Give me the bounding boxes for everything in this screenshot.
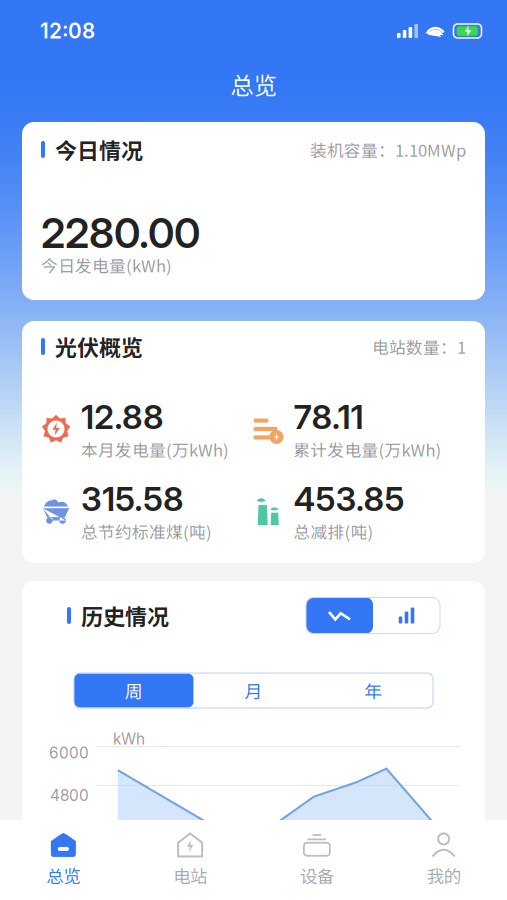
button[interactable]: 年	[313, 673, 433, 707]
staticText: 总节约标准煤(吨)	[81, 519, 212, 543]
button[interactable]: 月	[194, 673, 313, 707]
button[interactable]: 电站	[127, 825, 254, 895]
staticText: 装机容量：1.10MWp	[310, 137, 466, 161]
button[interactable]: 柱状图	[373, 597, 440, 633]
button[interactable]: 周	[74, 673, 194, 707]
staticText: 累计发电量(万kWh)	[293, 437, 441, 461]
button[interactable]: 我的	[380, 825, 507, 895]
button[interactable]: 设备	[253, 825, 380, 895]
staticText: 年	[364, 677, 382, 704]
staticText: 总览	[46, 863, 80, 888]
staticText: 2280.00	[41, 208, 200, 258]
staticText: 6000	[49, 744, 89, 762]
staticText: 设备	[300, 863, 334, 888]
staticText: 78.11	[293, 397, 363, 437]
staticText: 4800	[50, 786, 89, 805]
staticText: 本月发电量(万kWh)	[81, 437, 229, 461]
staticText: 电站数量：1	[372, 334, 466, 358]
staticText: 315.58	[81, 479, 184, 519]
staticText: 月	[244, 677, 262, 704]
staticText: 电站	[173, 863, 207, 888]
staticText: 12.88	[81, 397, 164, 437]
staticText: 今日发电量(kWh)	[41, 253, 172, 277]
staticText: kWh	[113, 730, 145, 748]
button[interactable]: 总览	[0, 825, 127, 895]
button[interactable]: 折线图	[306, 597, 373, 633]
staticText: 453.85	[293, 479, 404, 519]
staticText: 光伏概览	[55, 331, 143, 362]
staticText: 历史情况	[81, 600, 169, 631]
staticText: 总减排(吨)	[293, 519, 373, 543]
staticText: 今日情况	[55, 134, 143, 165]
staticText: 12:08	[40, 18, 95, 43]
staticText: 总览	[230, 67, 276, 101]
staticText: 我的	[427, 863, 461, 888]
staticText: 周	[125, 677, 143, 704]
